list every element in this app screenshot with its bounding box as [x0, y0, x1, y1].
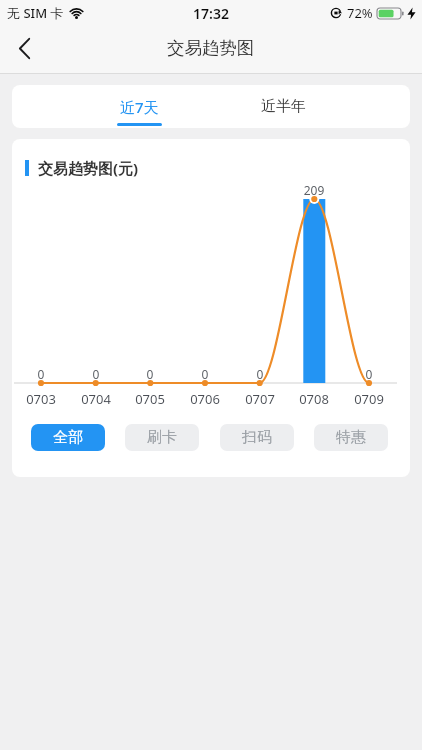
button[interactable]: 特惠 [314, 424, 388, 451]
staticText: 209 [298, 182, 330, 198]
staticText: 72% [347, 4, 373, 22]
staticText: 0 [250, 366, 270, 382]
staticText: 交易趋势图(元) [38, 158, 139, 178]
staticText: 17:32 [193, 4, 229, 23]
staticText: 扫码 [242, 428, 272, 447]
button[interactable]: 近半年 [211, 85, 355, 128]
button[interactable]: 全部 [31, 424, 105, 451]
staticText: 无 SIM 卡 [7, 4, 64, 22]
staticText: 0703 [19, 390, 63, 408]
staticText: 0709 [347, 390, 391, 408]
staticText: 近7天 [120, 97, 159, 117]
staticText: 近半年 [261, 97, 306, 116]
staticText: 0 [31, 366, 51, 382]
button[interactable]: 刷卡 [125, 424, 199, 451]
staticText: 0 [86, 366, 106, 382]
staticText: 0707 [238, 390, 282, 408]
staticText: 0706 [183, 390, 227, 408]
staticText: 全部 [53, 428, 83, 447]
staticText: 交易趋势图 [167, 37, 255, 59]
staticText: 0 [140, 366, 160, 382]
staticText: 0 [195, 366, 215, 382]
staticText: 0 [359, 366, 379, 382]
staticText: 0708 [292, 390, 336, 408]
button[interactable]: 近7天 [67, 85, 211, 128]
staticText: 刷卡 [147, 428, 177, 447]
button[interactable]: 扫码 [220, 424, 294, 451]
staticText: 0705 [128, 390, 172, 408]
staticText: 0704 [74, 390, 118, 408]
staticText: 特惠 [336, 428, 366, 447]
button[interactable] [0, 28, 40, 68]
